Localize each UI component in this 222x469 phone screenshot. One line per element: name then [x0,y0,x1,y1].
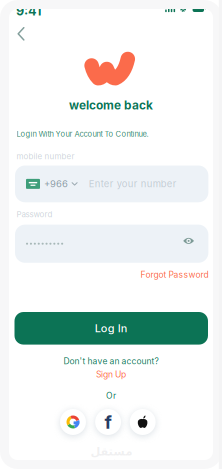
staticText: mostaql.com [96,459,126,464]
staticText: Enter your number [89,178,177,190]
staticText: Login With Your Account To Continue. [16,129,148,139]
button[interactable]: Sign in with Facebook [95,409,121,435]
button[interactable]: Forgot Password [140,269,208,280]
staticText: Password [16,209,52,219]
staticText: Forgot Password [140,269,208,280]
button[interactable]: Sign Up [0,369,222,379]
button[interactable]: Sign in with Apple [130,409,156,435]
staticText: f [105,411,112,433]
staticText: mobile number [16,151,74,161]
button[interactable]: Show password [183,237,197,250]
staticText: Sign Up [96,369,126,379]
button[interactable]: Log In [14,312,208,345]
staticText: مستقل [90,445,132,458]
button[interactable]: Back [9,19,32,49]
button[interactable]: Sign in with Google [60,409,86,435]
staticText: Don't have an account? [63,356,158,366]
staticText: Or [106,390,116,401]
staticText: 9:41 [16,3,41,18]
staticText: welcome back [69,98,153,112]
staticText: +966 [44,178,68,190]
staticText: Log In [95,322,128,335]
